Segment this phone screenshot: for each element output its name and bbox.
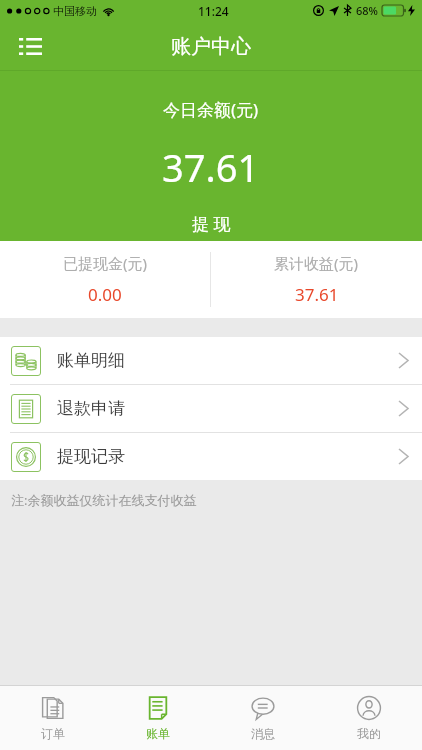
staticText: 注:余额收益仅统计在线支付收益 [11, 491, 197, 509]
button[interactable]: 账单 [105, 686, 210, 750]
staticText: 我的 [357, 726, 381, 741]
button[interactable]: Menu [8, 24, 52, 68]
staticText: 退款申请 [57, 398, 125, 419]
staticText: 提现记录 [57, 446, 125, 467]
button[interactable]: 提 现 [176, 209, 247, 238]
button[interactable]: 已提现金(元) [0, 241, 210, 318]
staticText: 账户中心 [171, 34, 251, 59]
staticText: 累计收益(元) [274, 253, 359, 273]
staticText: 11:24 [198, 3, 229, 19]
staticText: 账单明细 [57, 350, 125, 371]
button[interactable]: 累计收益(元) [211, 241, 422, 318]
staticText: 68% [356, 3, 378, 18]
button[interactable]: 退款申请 [0, 385, 422, 432]
staticText: 37.61 [162, 141, 260, 193]
staticText: 0.00 [88, 283, 122, 306]
button[interactable]: 提现记录 [0, 433, 422, 480]
staticText: 提 现 [192, 212, 231, 235]
staticText: 中国移动 [53, 4, 97, 18]
staticText: 订单 [41, 726, 65, 741]
button[interactable]: 订单 [0, 686, 105, 750]
staticText: 已提现金(元) [63, 253, 148, 273]
staticText: 消息 [251, 726, 275, 741]
button[interactable]: 账单明细 [0, 337, 422, 384]
staticText: 今日余额(元) [163, 98, 259, 121]
button[interactable]: 我的 [316, 686, 422, 750]
staticText: 账单 [146, 726, 170, 741]
staticText: 37.61 [295, 283, 339, 306]
button[interactable]: 消息 [210, 686, 316, 750]
